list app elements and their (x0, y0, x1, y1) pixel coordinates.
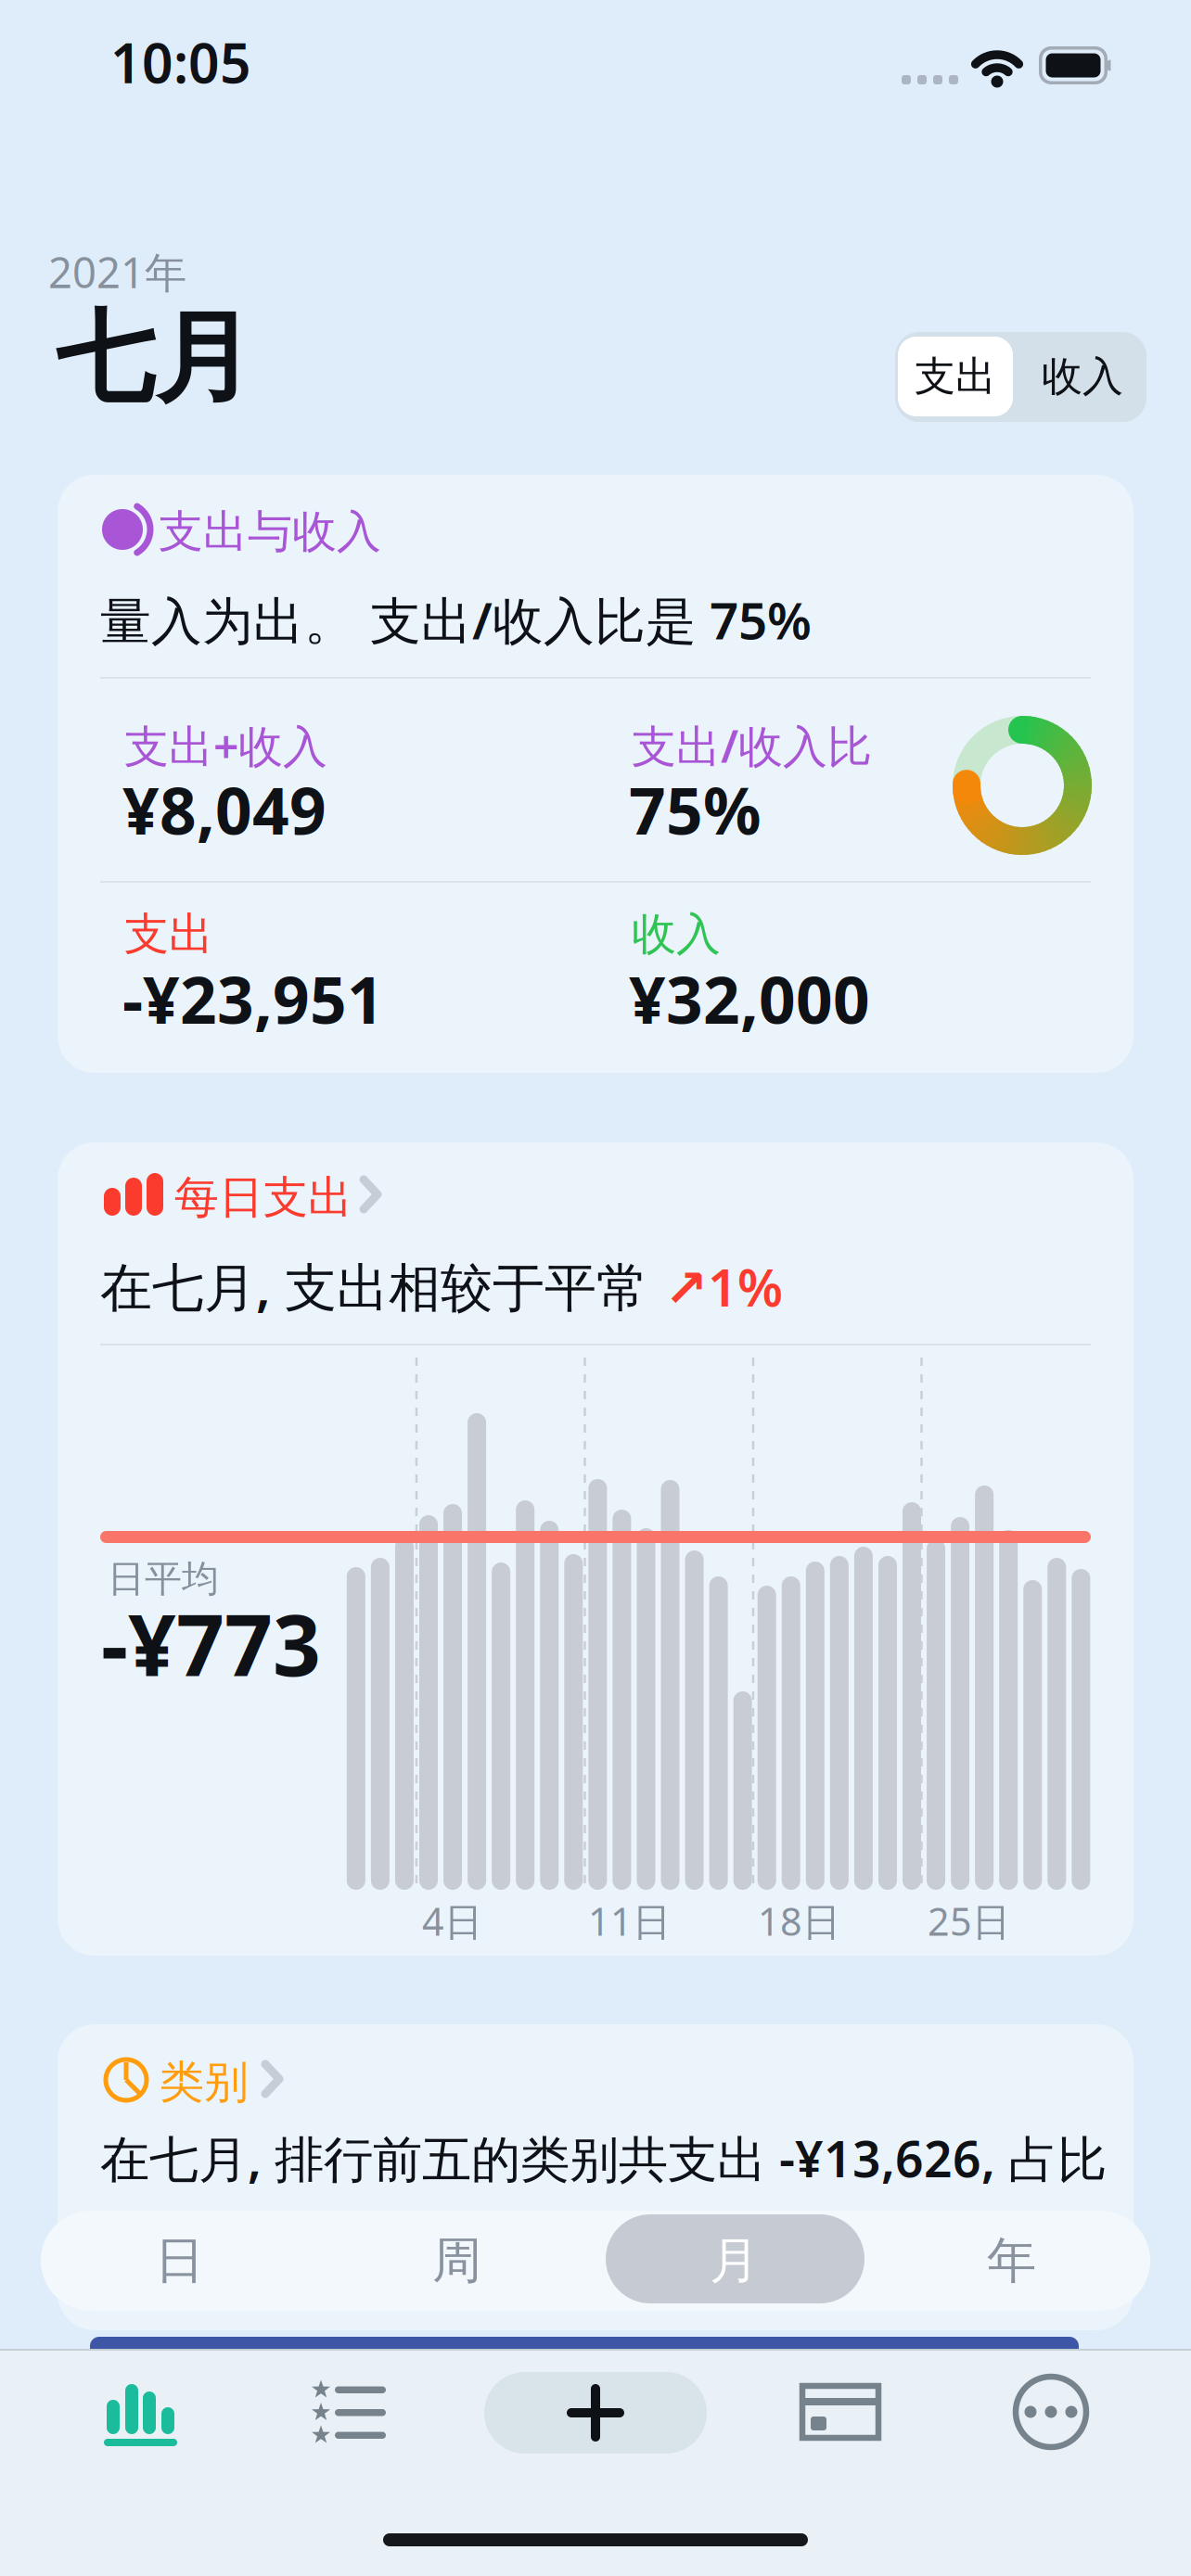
staticText: 收入 (632, 907, 721, 962)
staticText: 每日支出 (174, 1170, 352, 1225)
staticText: -¥23,951 (122, 956, 384, 1041)
staticText: 支出 (915, 351, 996, 402)
staticText: 75% (629, 767, 762, 852)
button[interactable]: 账户 (766, 2369, 915, 2499)
staticText: 4日 (422, 1895, 482, 1946)
staticText: 周 (432, 2230, 481, 2291)
staticText: 月 (710, 2230, 759, 2291)
button[interactable]: 统计 (87, 2369, 254, 2499)
button[interactable]: 日 (41, 2211, 318, 2311)
staticText: 支出+收入 (124, 716, 327, 775)
button[interactable]: 记一笔 (484, 2372, 707, 2454)
button[interactable]: 账单 (304, 2369, 1191, 2576)
staticText: 10:05 (110, 26, 251, 98)
staticText: 支出 (124, 907, 213, 962)
staticText: 11日 (588, 1895, 671, 1946)
staticText: 年 (987, 2230, 1036, 2291)
staticText: 量入为出。 支出/收入比是 75% (100, 586, 812, 653)
button[interactable]: 月 (595, 2211, 873, 2311)
staticText: 18日 (758, 1895, 840, 1946)
button[interactable]: 收入 (1025, 337, 1140, 416)
staticText: 支出/收入比 (632, 716, 872, 775)
staticText: ¥32,000 (629, 956, 870, 1041)
button[interactable]: 更多 (977, 2369, 1191, 2576)
button[interactable]: 周 (318, 2211, 595, 2311)
staticText: 在七月, 排行前五的类别共支出 -¥13,626, 占比 (100, 2125, 1107, 2191)
staticText: 在七月, 支出相较于平常 (100, 1252, 664, 1321)
button[interactable]: 支出 (898, 337, 1013, 416)
staticText: 支出与收入 (159, 504, 381, 559)
staticText: -¥773 (101, 1588, 321, 1699)
button[interactable]: 年 (873, 2211, 1150, 2311)
staticText: ↗1% (664, 1252, 783, 1321)
staticText: 七月 (56, 298, 254, 419)
staticText: 2021年 (48, 244, 186, 300)
staticText: 25日 (928, 1895, 1010, 1946)
staticText: 收入 (1042, 351, 1123, 402)
button[interactable]: 类别 (96, 2051, 1191, 2576)
staticText: 日 (155, 2230, 204, 2291)
button[interactable]: 每日支出 (96, 1161, 1191, 2576)
staticText: ¥8,049 (122, 767, 327, 852)
staticText: 日平均 (108, 1556, 219, 1602)
staticText: 类别 (160, 2055, 249, 2110)
